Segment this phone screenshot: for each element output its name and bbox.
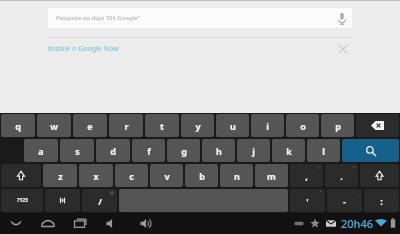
button[interactable]: t <box>145 114 179 137</box>
button[interactable]: Aumentar volume <box>130 213 164 234</box>
button[interactable]: ? <box>325 164 358 187</box>
button[interactable]: ?123 <box>1 189 43 212</box>
button[interactable]: r <box>109 114 143 137</box>
staticText: j <box>252 145 255 157</box>
staticText: " <box>320 190 322 195</box>
staticText: c <box>129 170 134 182</box>
staticText: w <box>50 120 58 132</box>
button[interactable]: h <box>202 139 235 162</box>
button[interactable]: ! <box>290 164 323 187</box>
button[interactable]: q <box>1 114 35 137</box>
staticText: : <box>380 195 383 207</box>
button[interactable]: o <box>286 114 319 137</box>
staticText: / <box>98 195 102 207</box>
button[interactable]: Pesquisa por voz <box>332 8 352 28</box>
staticText: z <box>58 170 63 182</box>
staticText: q <box>15 120 21 132</box>
staticText: . <box>340 170 343 182</box>
button[interactable]: Backspace <box>356 114 399 137</box>
staticText: i <box>266 120 269 132</box>
staticText: - <box>343 195 346 207</box>
staticText: u <box>230 120 236 132</box>
button[interactable]: Início <box>32 213 64 234</box>
staticText: o <box>300 120 306 132</box>
staticText: Instale o Google Now <box>48 44 334 54</box>
button[interactable]: Diminuir volume <box>96 213 130 234</box>
button[interactable]: Fechar <box>334 40 352 58</box>
button[interactable]: ; <box>364 189 399 212</box>
button[interactable]: n <box>220 164 253 187</box>
button[interactable]: a <box>24 139 58 162</box>
staticText: @ <box>110 190 114 195</box>
button[interactable]: Pesquisar <box>342 139 399 162</box>
button[interactable]: Pesquise ou diga "Ok Google" <box>48 8 352 28</box>
staticText: p <box>335 120 341 132</box>
staticText: s <box>75 145 80 157</box>
button[interactable]: k <box>272 139 305 162</box>
button[interactable]: m <box>255 164 288 187</box>
button[interactable]: d <box>96 139 130 162</box>
staticText: h <box>216 145 222 157</box>
staticText: 20h46 <box>341 216 374 231</box>
staticText: g <box>181 145 187 157</box>
staticText: ; <box>394 190 396 195</box>
button[interactable]: Alterar idioma <box>45 189 80 212</box>
staticText: ? <box>353 165 355 170</box>
staticText: f <box>147 145 151 157</box>
staticText: m <box>267 170 276 182</box>
button[interactable]: y <box>181 114 214 137</box>
staticText: l <box>322 145 325 157</box>
staticText: r <box>124 120 129 132</box>
staticText: _ <box>357 190 359 195</box>
staticText: x <box>93 170 99 182</box>
staticText: , <box>305 170 308 182</box>
staticText: ! <box>318 165 320 170</box>
button[interactable]: Voltar <box>0 213 32 234</box>
staticText: n <box>234 170 240 182</box>
button[interactable]: s <box>60 139 94 162</box>
staticText: k <box>286 145 292 157</box>
button[interactable]: Shift <box>360 164 399 187</box>
staticText: ?123 <box>17 197 28 204</box>
button[interactable]: e <box>73 114 107 137</box>
button[interactable]: _ <box>327 189 362 212</box>
button[interactable]: z <box>43 164 77 187</box>
button[interactable]: @ <box>82 189 117 212</box>
staticText: y <box>195 120 201 132</box>
button[interactable]: Instale o Google Now <box>48 40 352 58</box>
staticText: v <box>164 170 170 182</box>
button[interactable]: g <box>167 139 200 162</box>
staticText: t <box>160 120 164 132</box>
staticText: ' <box>306 195 309 207</box>
button[interactable]: l <box>307 139 340 162</box>
button[interactable]: j <box>237 139 270 162</box>
button[interactable]: w <box>37 114 71 137</box>
button[interactable]: u <box>216 114 249 137</box>
button[interactable]: Recentes <box>64 213 96 234</box>
button[interactable]: x <box>79 164 113 187</box>
button[interactable]: b <box>185 164 218 187</box>
staticText: Pesquise ou diga "Ok Google" <box>56 14 332 22</box>
staticText: a <box>38 145 44 157</box>
button[interactable]: v <box>150 164 183 187</box>
button[interactable]: c <box>115 164 148 187</box>
staticText: d <box>110 145 116 157</box>
button[interactable]: Shift <box>1 164 41 187</box>
button[interactable]: " <box>290 189 325 212</box>
staticText: e <box>87 120 93 132</box>
staticText: b <box>199 170 205 182</box>
button[interactable]: p <box>321 114 354 137</box>
button[interactable]: i <box>251 114 284 137</box>
button[interactable]: f <box>132 139 165 162</box>
